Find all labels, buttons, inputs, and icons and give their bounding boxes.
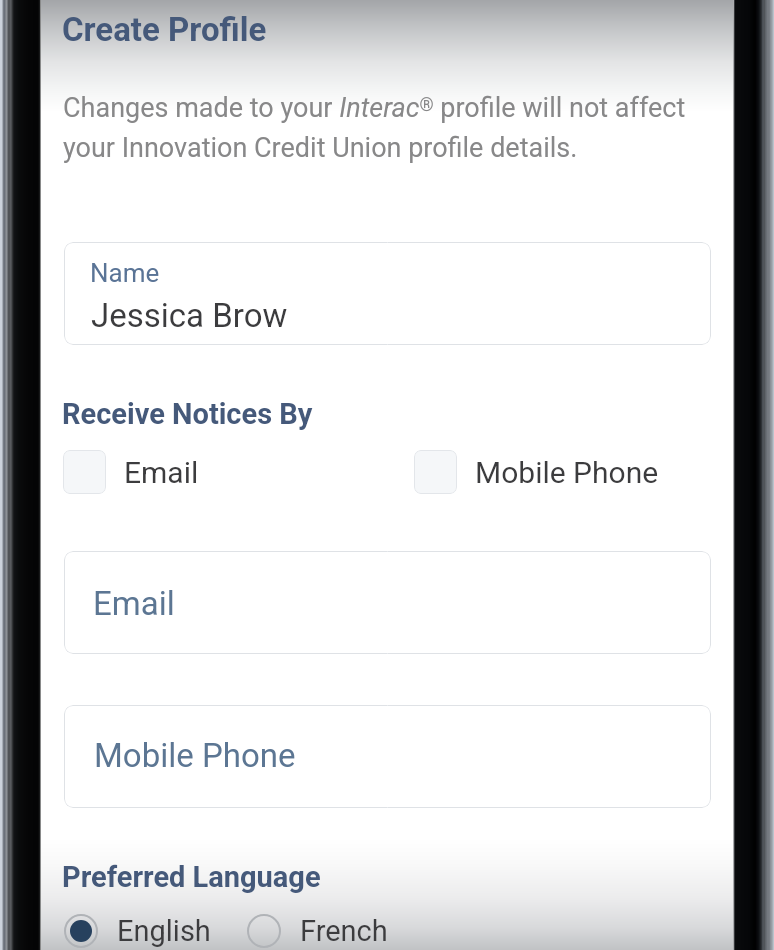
- button[interactable]: Email field: [64, 551, 711, 654]
- button[interactable]: Email: [63, 450, 199, 494]
- staticText: Email: [93, 584, 175, 623]
- staticText: Mobile Phone: [475, 455, 659, 490]
- staticText: Create Profile: [62, 10, 267, 49]
- button[interactable]: English: [63, 913, 211, 949]
- staticText: Jessica Brow: [91, 296, 288, 335]
- button[interactable]: Mobile Phone: [414, 450, 659, 494]
- staticText: English: [117, 914, 211, 948]
- staticText: Mobile Phone: [94, 736, 296, 775]
- staticText: French: [300, 914, 388, 948]
- button[interactable]: Name field: [64, 242, 711, 345]
- staticText: Receive Notices By: [62, 397, 313, 431]
- staticText: Email: [124, 455, 199, 490]
- staticText: Preferred Language: [62, 860, 321, 894]
- button[interactable]: French: [246, 913, 388, 949]
- button[interactable]: Mobile phone field: [64, 705, 711, 808]
- staticText: Changes made to your Interac® profile wi…: [63, 92, 708, 163]
- staticText: Name: [90, 258, 160, 288]
